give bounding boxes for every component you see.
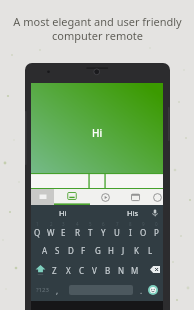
button[interactable]: H <box>104 241 117 259</box>
button[interactable]: 2 <box>44 220 57 238</box>
button[interactable]: Keyboard <box>54 189 90 205</box>
staticText: P <box>154 227 159 238</box>
staticText: B <box>105 265 111 276</box>
button[interactable]: A <box>38 241 51 259</box>
button[interactable]: J <box>117 241 130 259</box>
button[interactable]: . <box>135 281 147 299</box>
staticText: G <box>95 245 101 256</box>
button[interactable]: Backspace <box>145 260 165 279</box>
staticText: D <box>68 245 74 256</box>
staticText: K <box>134 245 139 256</box>
button[interactable]: L <box>144 241 157 259</box>
staticText: 9 <box>142 221 145 227</box>
staticText: 6 <box>102 221 105 227</box>
staticText: A most elegant and user friendly compute… <box>13 14 182 43</box>
button[interactable]: V <box>88 261 101 279</box>
button[interactable]: Clipboard <box>120 189 150 205</box>
button[interactable]: M <box>128 261 141 279</box>
staticText: Q <box>34 227 41 238</box>
button[interactable]: , <box>51 281 63 299</box>
button[interactable]: 8 <box>124 220 137 238</box>
button[interactable]: Hi <box>45 205 80 221</box>
staticText: S <box>55 245 60 256</box>
staticText: T <box>88 227 93 238</box>
staticText: Z <box>52 265 57 276</box>
button[interactable]: Z <box>48 261 61 279</box>
staticText: His <box>127 208 139 218</box>
staticText: J <box>122 245 125 256</box>
button[interactable]: His <box>115 205 150 221</box>
button[interactable]: 3 <box>57 220 70 238</box>
staticText: 0 <box>155 221 158 227</box>
button[interactable]: 7 <box>110 220 123 238</box>
staticText: X <box>66 265 71 276</box>
staticText: M <box>131 265 139 276</box>
button[interactable]: Shift <box>30 260 50 279</box>
button[interactable]: G <box>91 241 104 259</box>
staticText: ?123 <box>36 286 49 294</box>
button[interactable]: Recent <box>90 189 120 205</box>
staticText: V <box>92 265 97 276</box>
staticText: C <box>79 265 85 276</box>
button[interactable]: 6 <box>97 220 110 238</box>
button[interactable]: B <box>101 261 114 279</box>
button[interactable]: C <box>75 261 88 279</box>
staticText: Y <box>101 227 106 238</box>
staticText: F <box>81 245 86 256</box>
button[interactable]: F <box>77 241 90 259</box>
button[interactable]: 5 <box>84 220 97 238</box>
button[interactable]: K <box>130 241 143 259</box>
staticText: 4 <box>76 221 79 227</box>
staticText: R <box>75 227 80 238</box>
button[interactable]: X <box>62 261 75 279</box>
button[interactable]: ?123 <box>32 281 52 299</box>
staticText: 3 <box>62 221 65 227</box>
button[interactable]: S <box>51 241 64 259</box>
staticText: Hi <box>59 208 67 218</box>
button[interactable]: 4 <box>71 220 84 238</box>
button[interactable]: More <box>150 189 164 205</box>
staticText: 1 <box>36 221 39 227</box>
button[interactable]: Voice input <box>147 205 162 221</box>
staticText: 5 <box>89 221 92 227</box>
button[interactable]: N <box>115 261 128 279</box>
button[interactable]: Settings <box>31 189 54 205</box>
button[interactable]: 9 <box>137 220 150 238</box>
staticText: 7 <box>116 221 119 227</box>
staticText: W <box>47 227 55 238</box>
staticText: . <box>140 285 143 296</box>
button[interactable]: 0 <box>150 220 163 238</box>
button[interactable]: D <box>64 241 77 259</box>
staticText: I <box>129 227 132 238</box>
staticText: O <box>140 227 147 238</box>
button[interactable]: 1 <box>31 220 44 238</box>
staticText: A <box>42 245 48 256</box>
button[interactable]: Emoji <box>148 285 158 295</box>
staticText: U <box>114 227 120 238</box>
staticText: L <box>148 245 153 256</box>
staticText: Hi <box>92 126 103 140</box>
staticText: E <box>61 227 66 238</box>
staticText: H <box>108 245 114 256</box>
staticText: 8 <box>129 221 132 227</box>
staticText: 2 <box>50 221 53 227</box>
staticText: , <box>56 285 59 296</box>
staticText: N <box>118 265 125 276</box>
